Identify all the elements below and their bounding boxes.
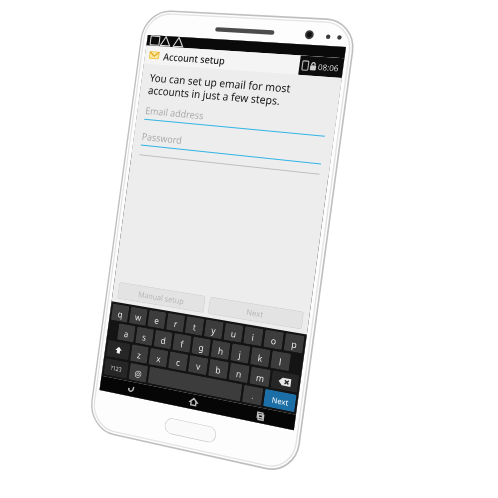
button[interactable]: @ (128, 363, 148, 383)
button[interactable]: v (188, 355, 208, 375)
button[interactable]: h (211, 340, 231, 360)
staticText: s (141, 330, 147, 343)
button[interactable]: f (172, 333, 192, 353)
button[interactable]: m (249, 366, 271, 387)
staticText: v (195, 359, 202, 372)
button[interactable]: Next (263, 389, 297, 412)
staticText: a (123, 327, 130, 340)
staticText: q (117, 307, 124, 320)
staticText: o (270, 334, 278, 347)
button[interactable]: Email address (144, 103, 327, 137)
staticText: b (215, 363, 222, 376)
button[interactable]: k (250, 347, 271, 367)
staticText: h (217, 344, 224, 357)
button[interactable]: Password (141, 129, 323, 164)
button[interactable]: Home key (164, 417, 217, 444)
button[interactable]: Shift (106, 340, 130, 360)
button[interactable]: s (135, 326, 154, 346)
staticText: You can set up email for most accounts i… (147, 70, 332, 112)
staticText: ?123 (110, 364, 122, 374)
button[interactable]: Recent apps (225, 401, 296, 430)
staticText: n (235, 367, 243, 380)
staticText: . (251, 389, 255, 401)
staticText: Next (271, 394, 289, 408)
staticText: g (198, 340, 205, 353)
button[interactable]: w (129, 307, 148, 326)
button[interactable]: z (130, 344, 149, 364)
staticText: Manual setup (137, 288, 185, 306)
staticText: j (238, 348, 242, 360)
button[interactable]: x (148, 348, 168, 368)
button[interactable]: Delete (270, 370, 299, 393)
button[interactable]: c (168, 351, 188, 371)
button[interactable]: b (208, 359, 229, 379)
staticText: w (134, 310, 143, 323)
staticText: m (255, 370, 266, 384)
staticText: t (192, 320, 198, 333)
button[interactable]: Back (100, 376, 162, 403)
button[interactable] (148, 366, 242, 401)
staticText: 08:06 (317, 61, 340, 73)
staticText: Email address (145, 103, 205, 122)
staticText: Next (246, 306, 264, 320)
button[interactable]: d (154, 330, 173, 349)
button[interactable]: ?123 (103, 358, 129, 379)
button[interactable]: r (166, 313, 185, 332)
button[interactable]: q (111, 303, 129, 323)
button[interactable]: Manual setup (117, 282, 206, 313)
staticText: r (173, 317, 178, 329)
button[interactable]: n (228, 362, 250, 383)
staticText: p (291, 337, 298, 350)
staticText: x (156, 352, 162, 364)
staticText: y (211, 323, 217, 336)
staticText: f (180, 337, 185, 350)
button[interactable]: t (185, 316, 204, 336)
button[interactable]: Next (208, 297, 304, 329)
staticText: c (175, 356, 181, 368)
staticText: l (278, 355, 283, 368)
button[interactable]: a (117, 323, 136, 342)
button[interactable]: Home (160, 388, 227, 416)
button[interactable]: i (243, 326, 264, 346)
staticText: Account setup (162, 50, 226, 67)
staticText: k (257, 351, 263, 364)
button[interactable]: l (270, 350, 291, 371)
staticText: i (251, 330, 255, 343)
button[interactable]: u (223, 323, 244, 343)
staticText: z (136, 348, 142, 361)
staticText: @ (134, 367, 143, 380)
staticText: d (160, 334, 167, 346)
staticText: Password (141, 129, 183, 147)
button[interactable]: p (283, 333, 305, 354)
staticText: e (154, 314, 161, 326)
button[interactable]: . (242, 385, 263, 406)
button[interactable]: j (230, 343, 250, 364)
button[interactable]: e (147, 310, 166, 329)
button[interactable]: y (204, 319, 224, 339)
staticText: u (230, 327, 237, 340)
button[interactable]: o (263, 329, 284, 350)
button[interactable]: g (191, 336, 211, 356)
